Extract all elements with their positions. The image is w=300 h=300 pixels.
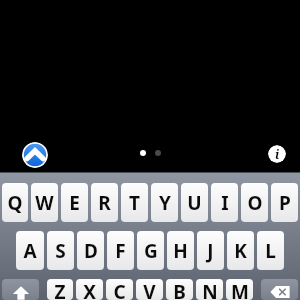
button[interactable]: T — [121, 183, 148, 222]
button[interactable]: Q — [2, 183, 28, 222]
button[interactable]: L — [257, 231, 284, 270]
button[interactable]: O — [241, 183, 268, 222]
staticText: N — [202, 279, 218, 300]
button[interactable]: V — [136, 279, 163, 300]
button[interactable]: P — [271, 183, 298, 222]
staticText: i — [275, 146, 280, 162]
staticText: E — [69, 190, 80, 216]
button[interactable]: Shift — [2, 279, 39, 300]
staticText: W — [35, 190, 54, 216]
staticText: L — [265, 238, 276, 264]
staticText: A — [23, 238, 37, 264]
button[interactable]: N — [196, 279, 223, 300]
button[interactable]: J — [197, 231, 224, 270]
button[interactable]: A — [16, 231, 44, 270]
button[interactable]: Info — [268, 145, 286, 163]
staticText: I — [221, 190, 229, 216]
button[interactable]: W — [31, 183, 58, 222]
staticText: Z — [54, 279, 66, 300]
button[interactable]: H — [167, 231, 194, 270]
staticText: Y — [159, 190, 171, 216]
button[interactable]: S — [47, 231, 74, 270]
staticText: R — [98, 190, 111, 216]
staticText: B — [173, 279, 186, 300]
staticText: C — [113, 279, 126, 300]
staticText: S — [55, 238, 66, 264]
button[interactable]: M — [226, 279, 253, 300]
staticText: O — [247, 190, 263, 216]
button[interactable]: Y — [151, 183, 178, 222]
button[interactable]: Backspace — [261, 279, 298, 300]
button[interactable]: I — [211, 183, 238, 222]
button[interactable]: E — [61, 183, 88, 222]
button[interactable]: Z — [47, 279, 73, 300]
button[interactable]: X — [76, 279, 103, 300]
staticText: K — [234, 238, 247, 264]
button[interactable]: G — [137, 231, 164, 270]
staticText: J — [207, 238, 214, 264]
button[interactable]: F — [107, 231, 134, 270]
button[interactable]: C — [106, 279, 133, 300]
staticText: D — [84, 238, 98, 264]
button[interactable]: D — [77, 231, 104, 270]
staticText: P — [279, 190, 291, 216]
button[interactable]: K — [227, 231, 254, 270]
staticText: Q — [7, 190, 23, 216]
staticText: F — [115, 238, 126, 264]
staticText: T — [129, 190, 140, 216]
staticText: U — [187, 190, 202, 216]
staticText: H — [173, 238, 188, 264]
staticText: G — [144, 238, 158, 264]
button[interactable]: U — [181, 183, 208, 222]
staticText: M — [231, 279, 249, 300]
button[interactable]: B — [166, 279, 193, 300]
staticText: X — [83, 279, 96, 300]
button[interactable]: Previous — [22, 142, 48, 168]
button[interactable]: R — [91, 183, 118, 222]
staticText: V — [143, 279, 156, 300]
